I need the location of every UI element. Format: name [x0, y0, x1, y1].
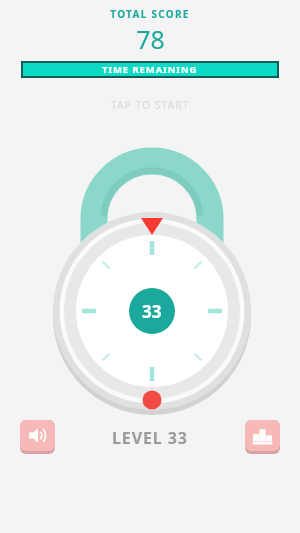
button[interactable]: Leaderboard: [245, 420, 280, 454]
staticText: TIME REMAINING: [102, 63, 198, 76]
staticText: TOTAL SCORE: [110, 7, 190, 21]
staticText: LEVEL 33: [112, 427, 188, 449]
staticText: TAP TO START: [111, 98, 190, 112]
button[interactable]: Sound: [20, 420, 55, 454]
button[interactable]: Lock dial, tap to start: [0, 0, 300, 533]
staticText: 33: [142, 300, 162, 323]
button[interactable]: Time remaining: [23, 63, 277, 76]
staticText: 78: [136, 22, 165, 56]
